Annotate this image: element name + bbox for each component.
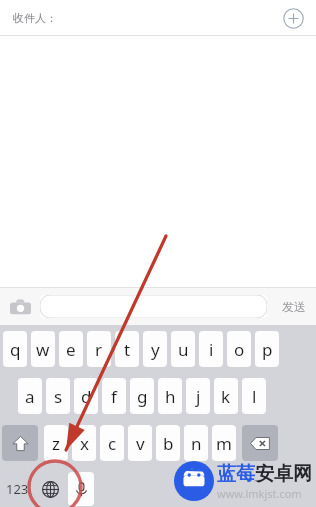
staticText: t	[124, 338, 131, 361]
button[interactable]: w	[31, 331, 55, 367]
staticText: r	[95, 338, 103, 361]
button[interactable]: Shift	[2, 425, 38, 461]
button[interactable]: b	[156, 425, 180, 461]
staticText: w	[36, 338, 50, 361]
staticText: z	[52, 432, 60, 455]
staticText: p	[262, 338, 273, 361]
button[interactable]: m	[212, 425, 236, 461]
staticText: 收件人：	[13, 11, 57, 25]
button[interactable]: i	[199, 331, 223, 367]
staticText: f	[111, 385, 117, 408]
staticText: c	[108, 432, 117, 455]
staticText: y	[151, 338, 160, 361]
button[interactable]: Voice input	[68, 472, 94, 506]
staticText: d	[81, 385, 92, 408]
staticText: g	[137, 385, 148, 408]
staticText: 发送	[282, 299, 306, 314]
button[interactable]: e	[59, 331, 83, 367]
button[interactable]: x	[72, 425, 96, 461]
staticText: m	[216, 432, 232, 455]
button[interactable]: 123	[0, 472, 34, 506]
staticText: 蓝莓	[217, 462, 255, 486]
button[interactable]: Switch language	[34, 472, 66, 506]
staticText: x	[80, 432, 89, 455]
button[interactable]: p	[255, 331, 279, 367]
button[interactable]: r	[87, 331, 111, 367]
button[interactable]: j	[186, 378, 210, 414]
button[interactable]: v	[128, 425, 152, 461]
staticText: o	[234, 338, 245, 361]
button[interactable]: z	[44, 425, 68, 461]
staticText: a	[25, 385, 35, 408]
button[interactable]: d	[74, 378, 98, 414]
button[interactable]: Camera	[5, 292, 35, 322]
staticText: u	[178, 338, 189, 361]
button[interactable]: 发送	[282, 299, 306, 314]
button[interactable]: o	[227, 331, 251, 367]
button[interactable]: k	[214, 378, 238, 414]
staticText: h	[165, 385, 176, 408]
button[interactable]: c	[100, 425, 124, 461]
button[interactable]: s	[46, 378, 70, 414]
staticText: s	[54, 385, 63, 408]
staticText: v	[136, 432, 145, 455]
button[interactable]: a	[18, 378, 42, 414]
staticText: www.lmkjst.com	[217, 486, 302, 501]
staticText: j	[196, 385, 201, 408]
button[interactable]: g	[130, 378, 154, 414]
button[interactable]	[40, 295, 267, 318]
button[interactable]: y	[143, 331, 167, 367]
staticText: n	[191, 432, 202, 455]
button[interactable]: Add recipient	[282, 7, 304, 29]
button[interactable]: h	[158, 378, 182, 414]
button[interactable]: l	[242, 378, 266, 414]
staticText: 123	[6, 480, 29, 498]
staticText: k	[221, 385, 231, 408]
button[interactable]: f	[102, 378, 126, 414]
button[interactable]: t	[115, 331, 139, 367]
staticText: i	[209, 338, 214, 361]
button[interactable]: q	[3, 331, 27, 367]
staticText: l	[252, 385, 257, 408]
staticText: e	[66, 338, 76, 361]
button[interactable]: n	[184, 425, 208, 461]
staticText: 安卓网	[255, 462, 312, 486]
button[interactable]: u	[171, 331, 195, 367]
staticText: b	[163, 432, 174, 455]
button[interactable]: Backspace	[242, 425, 278, 461]
staticText: q	[10, 338, 21, 361]
